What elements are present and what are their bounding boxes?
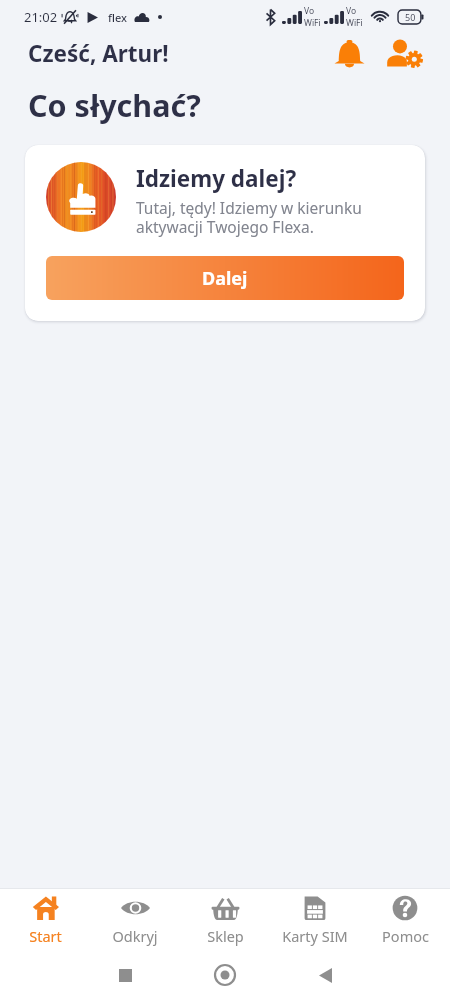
staticText: Start [29, 926, 62, 946]
button[interactable]: Karty SIM [270, 889, 360, 951]
staticText: WiFi [304, 17, 321, 29]
staticText: flex [108, 10, 127, 25]
button[interactable]: Dalej [46, 256, 404, 300]
staticText: Dalej [202, 266, 248, 291]
staticText: 21:02 [24, 8, 58, 26]
staticText: Sklep [207, 926, 244, 946]
staticText: WiFi [346, 17, 363, 29]
button[interactable]: Odkryj [90, 889, 180, 951]
staticText: Karty SIM [282, 926, 348, 946]
staticText: Cześć, Artur! [28, 38, 169, 69]
staticText: Odkryj [112, 926, 158, 946]
staticText: Co słychać? [28, 84, 201, 126]
staticText: Tutaj, tędy! Idziemy w kierunku aktywacj… [136, 197, 404, 237]
staticText: Vo [346, 5, 357, 17]
staticText: Vo [304, 5, 315, 17]
button[interactable]: Sklep [180, 889, 270, 951]
button[interactable]: Pomoc [360, 889, 450, 951]
button[interactable]: Notifications [325, 34, 365, 72]
button[interactable]: Start [0, 889, 90, 951]
staticText: Pomoc [382, 926, 429, 946]
staticText: Idziemy dalej? [136, 163, 297, 194]
staticText: 50 [405, 11, 416, 23]
button[interactable]: Account settings [384, 34, 424, 72]
